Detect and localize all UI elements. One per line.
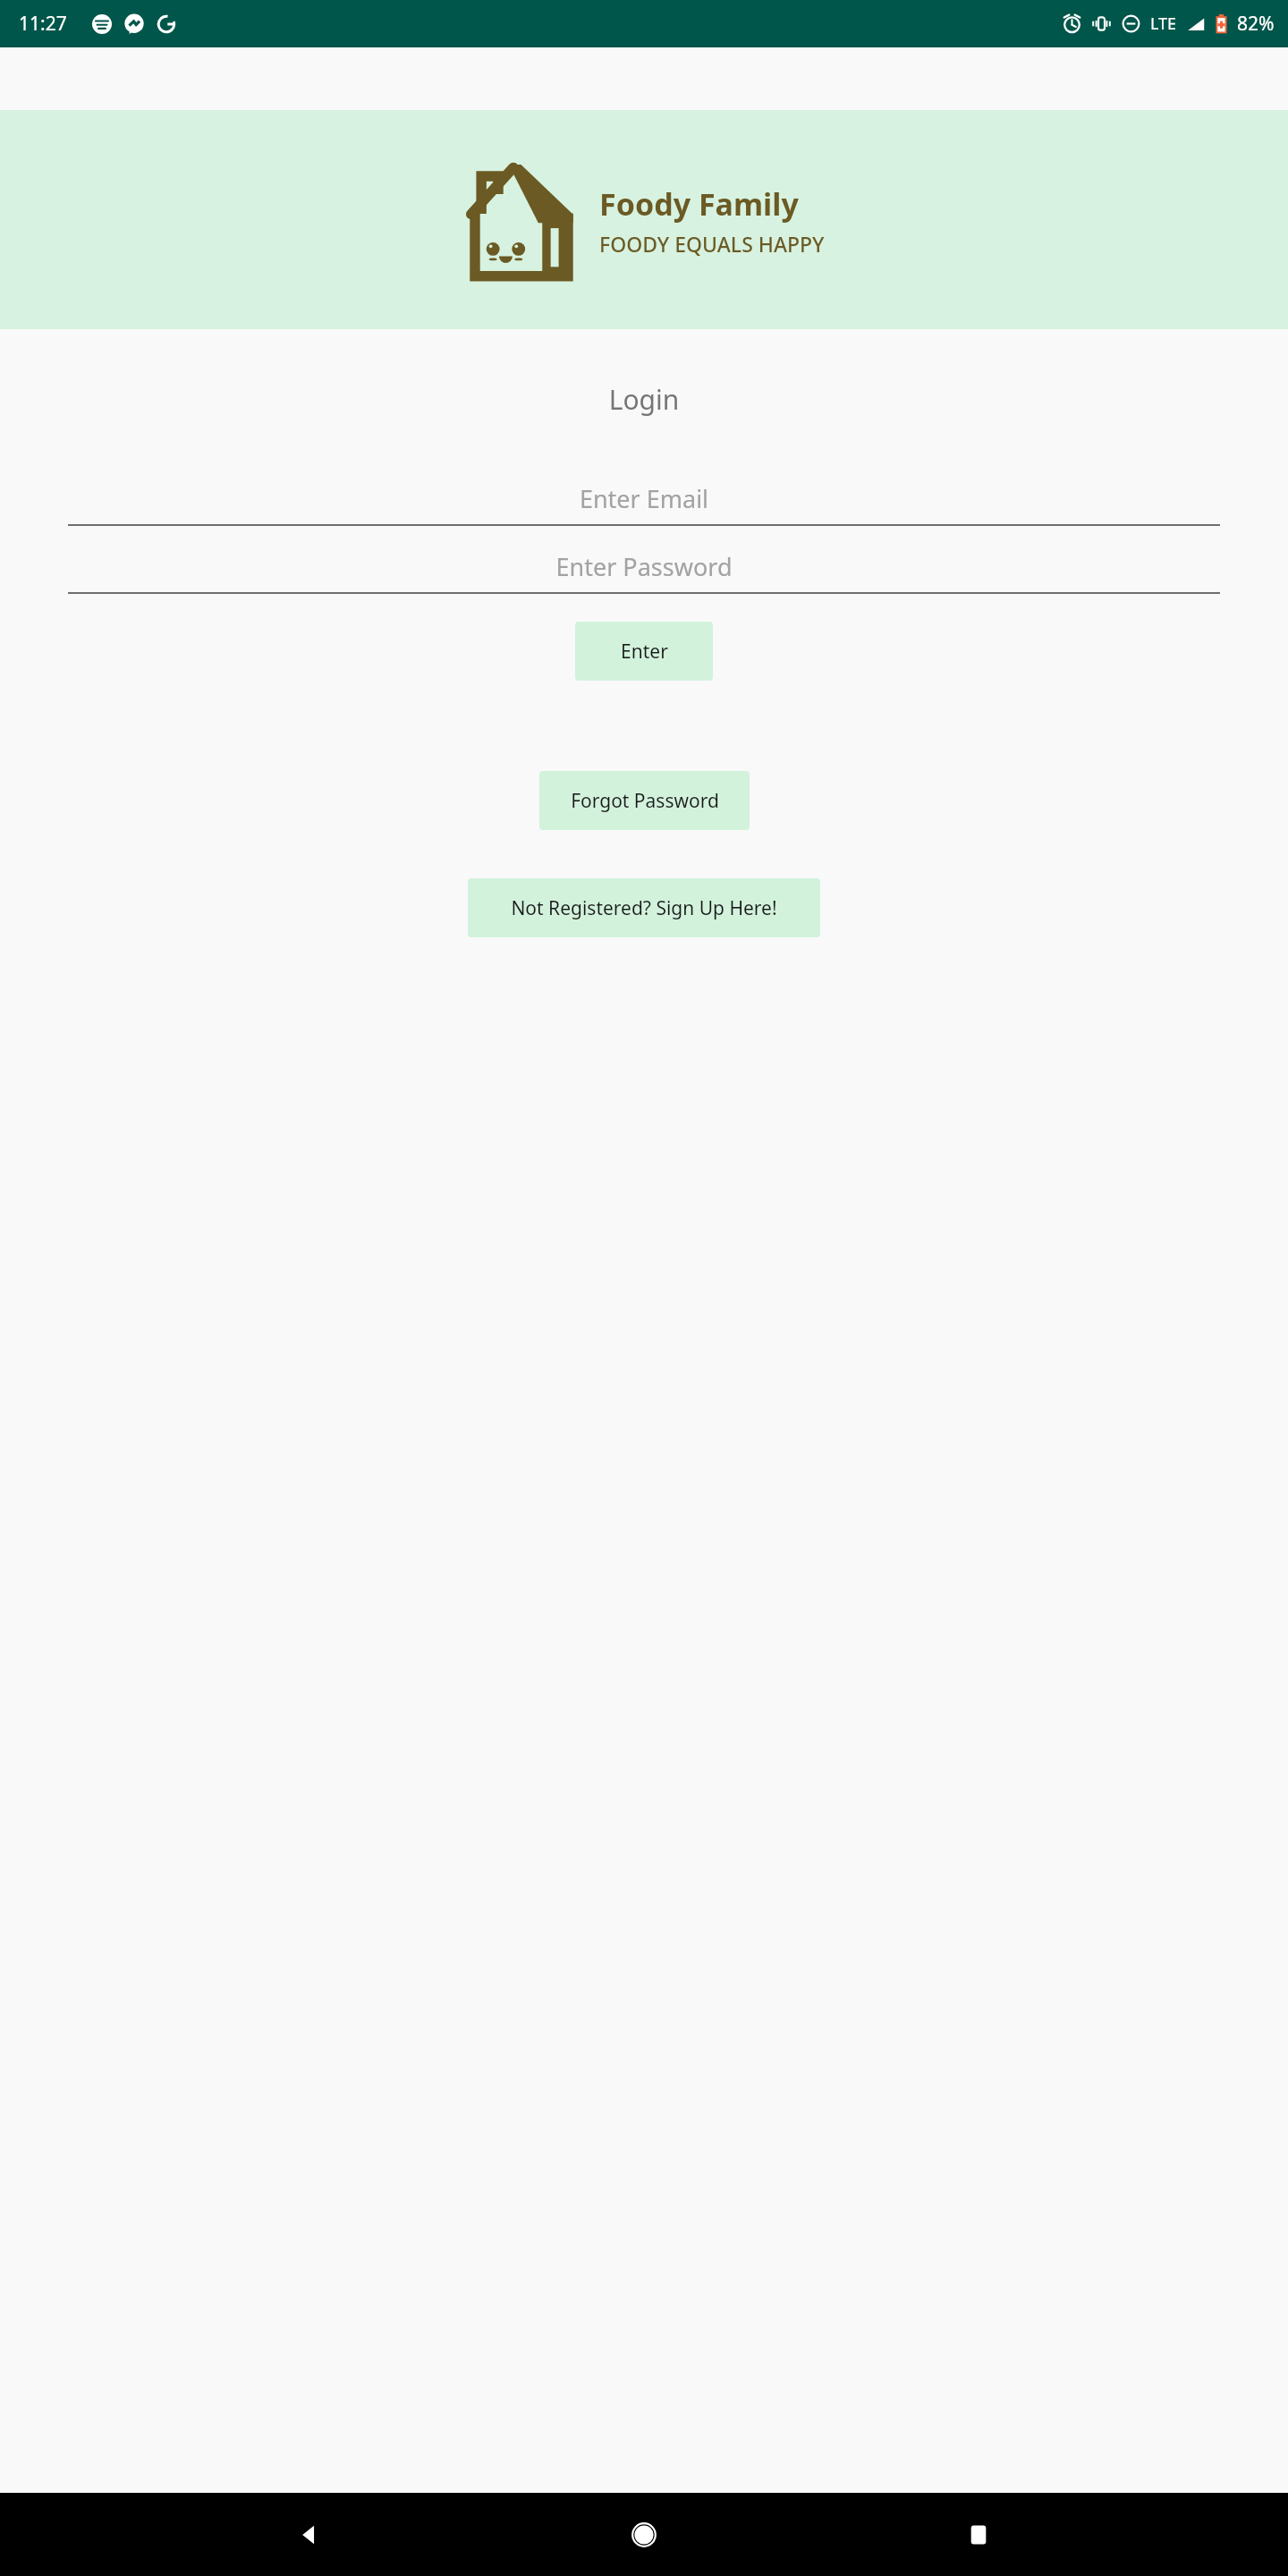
staticText: FOODY EQUALS HAPPY xyxy=(599,230,825,258)
staticText: 82% xyxy=(1237,11,1275,37)
button[interactable]: Back xyxy=(284,2510,335,2560)
staticText: Not Registered? Sign Up Here! xyxy=(511,895,777,921)
staticText: Login xyxy=(0,381,1288,418)
staticText: LTE xyxy=(1150,13,1177,35)
staticText: Forgot Password xyxy=(571,788,719,814)
button[interactable]: Home xyxy=(619,2510,669,2560)
staticText: Enter Email xyxy=(68,482,1220,515)
button[interactable]: Recents xyxy=(953,2510,1004,2560)
staticText: Enter Password xyxy=(68,550,1220,583)
button[interactable]: Not Registered? Sign Up Here! xyxy=(468,878,820,937)
button[interactable]: Forgot Password xyxy=(539,771,750,830)
staticText: 11:27 xyxy=(19,11,67,37)
button[interactable]: Enter xyxy=(575,622,713,681)
staticText: Foody Family xyxy=(599,183,799,225)
button[interactable]: Enter Password xyxy=(68,550,1220,594)
button[interactable]: Enter Email xyxy=(68,482,1220,526)
staticText: Enter xyxy=(621,639,668,665)
